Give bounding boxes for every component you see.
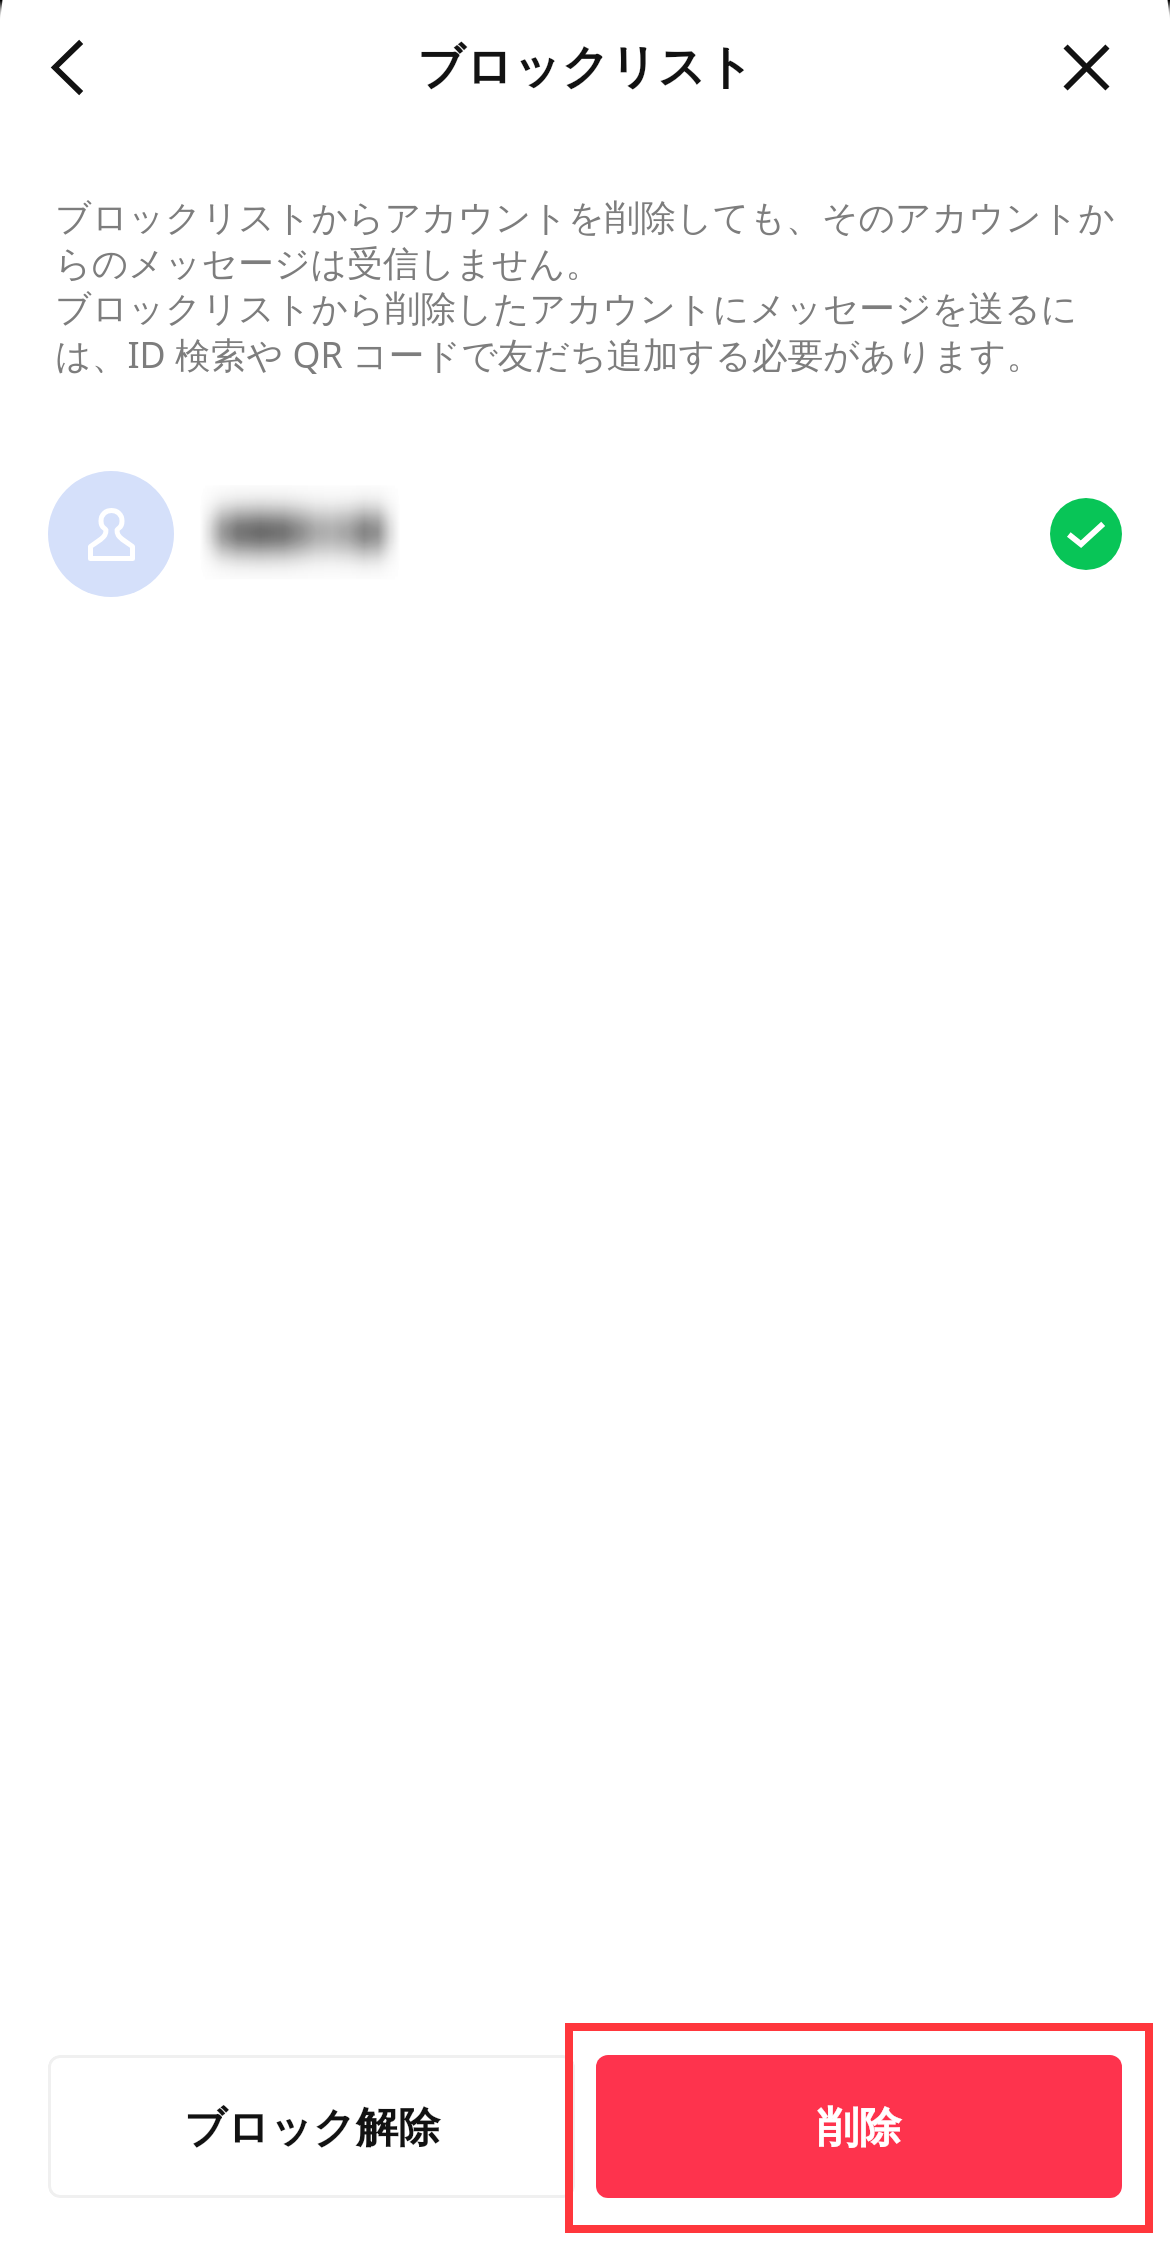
button[interactable]: 削除 bbox=[596, 2055, 1122, 2198]
button[interactable]: Close bbox=[1038, 19, 1134, 115]
staticText: ブロック解除 bbox=[184, 2102, 440, 2155]
staticText: 削除 bbox=[817, 2102, 901, 2155]
button[interactable]: Selected bbox=[0, 455, 1170, 613]
button[interactable]: Back bbox=[19, 19, 115, 115]
button[interactable]: Selected bbox=[1050, 498, 1122, 570]
staticText: ブロックリストからアカウントを削除しても、そのアカウントか らのメッセージは受信… bbox=[55, 196, 1135, 378]
button[interactable]: ブロック解除 bbox=[48, 2055, 575, 2198]
staticText: ブロックリスト bbox=[417, 38, 754, 97]
